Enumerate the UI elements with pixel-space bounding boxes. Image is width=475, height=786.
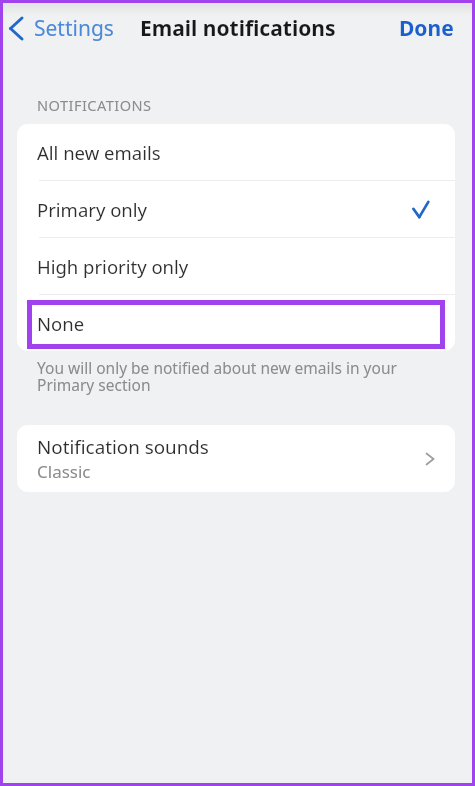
staticText: Primary only xyxy=(37,197,148,222)
button[interactable]: High priority only xyxy=(17,238,455,294)
button[interactable]: Primary only xyxy=(17,181,455,237)
staticText: NOTIFICATIONS xyxy=(37,95,152,115)
staticText: Done xyxy=(399,14,454,43)
button[interactable]: None xyxy=(17,295,455,351)
button[interactable]: All new emails xyxy=(17,124,455,180)
staticText: You will only be notified about new emai… xyxy=(37,357,410,396)
staticText: All new emails xyxy=(37,140,161,165)
staticText: Email notifications xyxy=(140,14,336,43)
staticText: Classic xyxy=(37,460,91,483)
button[interactable]: Done xyxy=(399,14,454,43)
staticText: None xyxy=(37,311,85,336)
staticText: High priority only xyxy=(37,254,189,279)
button[interactable]: Notification sounds xyxy=(17,425,455,492)
button[interactable]: Back to Settings xyxy=(7,14,116,43)
staticText: Notification sounds xyxy=(37,434,209,460)
staticText: Settings xyxy=(34,14,114,43)
